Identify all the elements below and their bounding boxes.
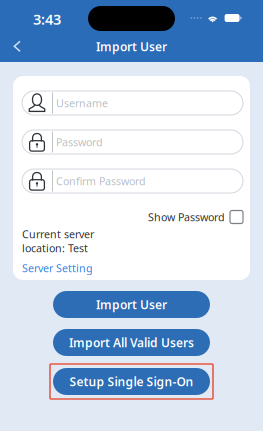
staticText: Import All Valid Users xyxy=(69,334,194,350)
staticText: 3:43 xyxy=(33,9,61,29)
button[interactable]: Password xyxy=(22,130,243,154)
staticText: Setup Single Sign-On xyxy=(69,373,193,389)
button[interactable]: Import User xyxy=(53,291,210,318)
button[interactable]: Setup Single Sign-On xyxy=(53,368,210,395)
button[interactable]: Server Setting xyxy=(22,262,93,274)
staticText: Current server xyxy=(22,227,94,241)
staticText: Username xyxy=(56,96,108,110)
staticText: location: Test xyxy=(22,241,88,255)
staticText: Import User xyxy=(96,38,167,54)
button[interactable]: Back xyxy=(6,33,28,59)
staticText: Import User xyxy=(96,296,167,312)
staticText: Show Password xyxy=(148,210,225,224)
button[interactable]: Show Password xyxy=(148,210,243,224)
button[interactable]: Import All Valid Users xyxy=(53,329,210,356)
button[interactable]: Username xyxy=(22,91,243,115)
staticText: Server Setting xyxy=(22,261,93,275)
staticText: Password xyxy=(56,135,103,149)
button[interactable]: Confirm Password xyxy=(22,169,243,193)
staticText: Confirm Password xyxy=(56,174,146,188)
